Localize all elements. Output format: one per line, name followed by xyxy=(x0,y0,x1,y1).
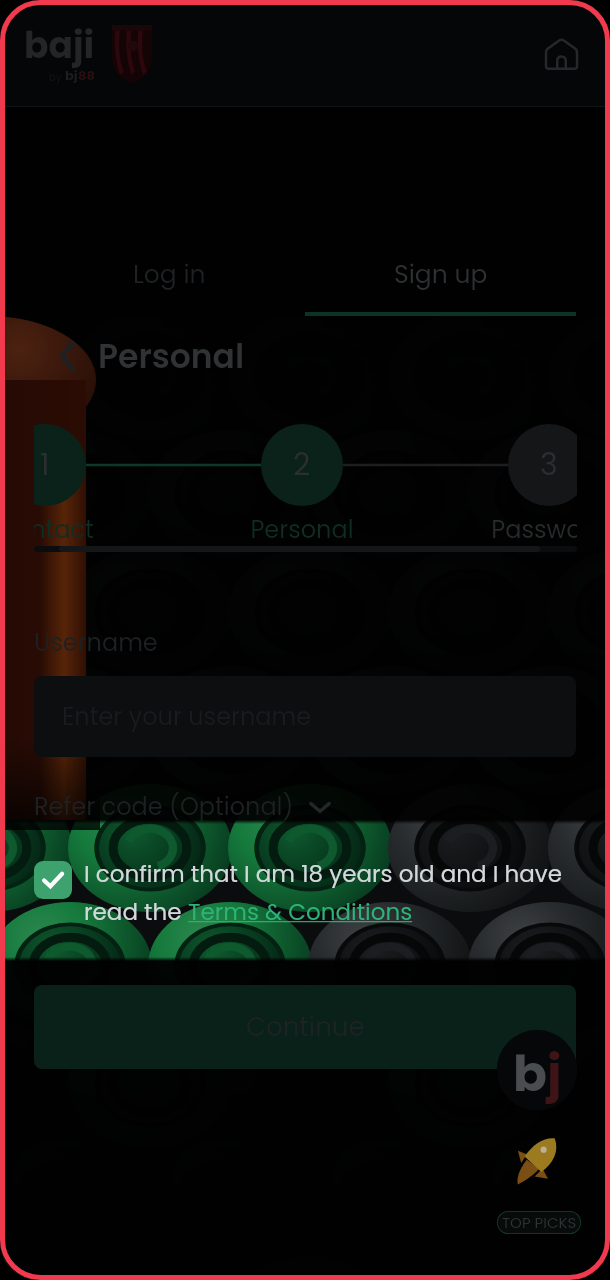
staticText: Refer code (Optional) xyxy=(34,790,294,824)
staticText: 2 xyxy=(293,444,311,486)
staticText: Enter your username xyxy=(62,700,312,734)
staticText: read the xyxy=(84,896,188,928)
button[interactable]: Home xyxy=(532,25,590,83)
staticText: Password xyxy=(491,513,577,547)
button[interactable]: I confirm that I am 18 years old and I h… xyxy=(34,858,584,928)
staticText: 1 xyxy=(40,444,50,486)
staticText: TOP PICKS xyxy=(502,1212,577,1233)
staticText: Personal xyxy=(250,513,354,547)
staticText: Contact xyxy=(34,513,94,547)
staticText: Sign up xyxy=(394,257,488,292)
button[interactable]: Back xyxy=(46,334,90,378)
staticText: by xyxy=(49,70,65,84)
staticText: Personal xyxy=(98,333,245,379)
button[interactable]: Log in xyxy=(34,257,305,316)
staticText: baji xyxy=(24,20,95,70)
staticText: Log in xyxy=(133,257,206,292)
staticText: 3 xyxy=(540,444,558,486)
staticText: bj xyxy=(65,66,78,84)
staticText: j xyxy=(547,1039,562,1109)
staticText: b xyxy=(513,1039,547,1109)
staticText: Username xyxy=(34,626,158,660)
staticText: Terms & Conditions xyxy=(188,896,413,928)
button[interactable]: Continue xyxy=(34,985,576,1069)
staticText: I confirm that I am 18 years old and I h… xyxy=(84,858,562,890)
staticText: 88 xyxy=(78,66,95,84)
button[interactable]: Sign up xyxy=(305,257,576,316)
staticText: Continue xyxy=(246,1009,365,1045)
button[interactable]: Top Picks xyxy=(484,1126,588,1234)
button[interactable]: Refer code (Optional) xyxy=(34,786,332,828)
